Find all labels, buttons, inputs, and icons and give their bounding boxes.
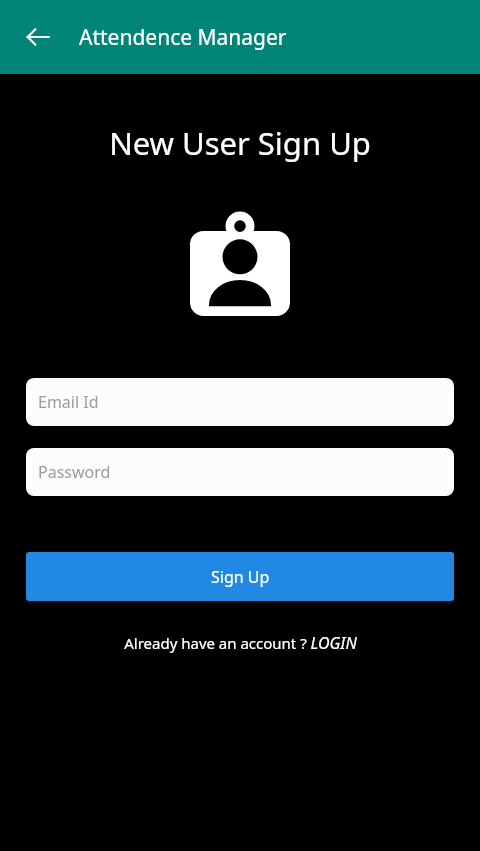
staticText: Sign Up — [211, 566, 270, 588]
button[interactable]: Password — [26, 448, 454, 496]
staticText: Attendence Manager — [79, 23, 287, 52]
button[interactable]: Sign Up — [26, 552, 454, 601]
button[interactable]: Back — [20, 19, 56, 55]
staticText: New User Sign Up — [0, 122, 480, 164]
staticText: Already have an account ? LOGIN — [124, 632, 357, 654]
button[interactable]: Already have an account ? LOGIN — [0, 632, 480, 654]
staticText: Email Id — [38, 391, 99, 413]
button[interactable]: Email Id — [26, 378, 454, 426]
staticText: Password — [38, 461, 111, 483]
